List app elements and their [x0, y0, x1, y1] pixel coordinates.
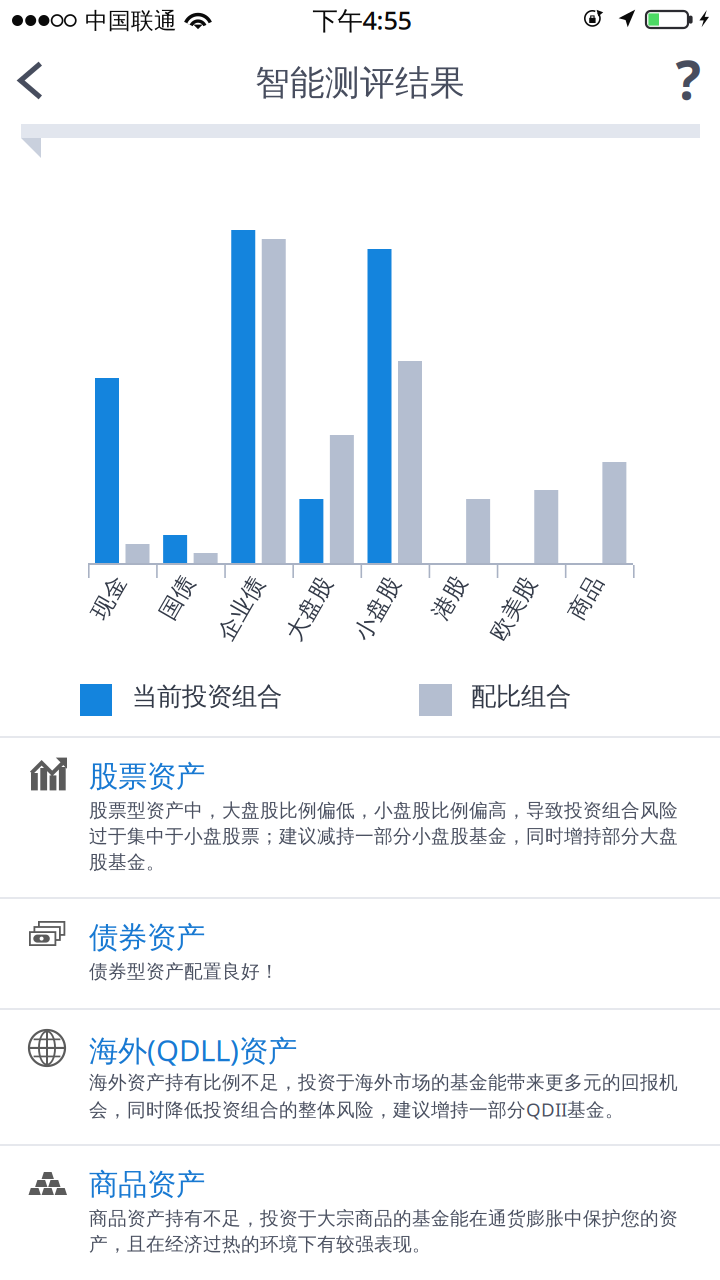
staticText: 中国联通 — [85, 7, 177, 35]
staticText: 港股 — [427, 584, 473, 611]
staticText: 下午4:55 — [312, 3, 411, 37]
button[interactable]: 股票资产 — [0, 738, 720, 897]
button[interactable]: 帮助 — [655, 46, 720, 112]
staticText: 债券型资产配置良好！ — [89, 960, 279, 983]
staticText: 小盘股 — [343, 595, 412, 622]
staticText: 股票型资产中，大盘股比例偏低，小盘股比例偏高，导致投资组合风险过于集中于小盘股票… — [89, 799, 678, 874]
button[interactable]: 智能测评结果 — [210, 50, 510, 116]
button[interactable]: 海外(QDLL)资产 — [0, 1010, 720, 1144]
staticText: 商品资产 — [89, 1166, 205, 1202]
staticText: 商品 — [563, 584, 609, 611]
staticText: 欧美股 — [479, 595, 548, 622]
staticText: 大盘股 — [275, 595, 344, 622]
staticText: ? — [675, 44, 700, 114]
staticText: 配比组合 — [471, 681, 571, 712]
staticText: 现金 — [86, 584, 132, 611]
staticText: 国债 — [154, 584, 200, 611]
button[interactable]: 债券资产 — [0, 899, 720, 1008]
staticText: 债券资产 — [89, 919, 205, 955]
staticText: 股票资产 — [89, 758, 205, 794]
staticText: 智能测评结果 — [255, 62, 465, 104]
button[interactable]: 商品资产 — [0, 1146, 720, 1280]
button[interactable]: 返回 — [0, 46, 74, 112]
staticText: 企业债 — [207, 595, 276, 622]
staticText: 海外(QDLL)资产 — [89, 1030, 297, 1069]
staticText: 商品资产持有不足，投资于大宗商品的基金能在通货膨胀中保护您的资产，且在经济过热的… — [89, 1207, 678, 1256]
staticText: 海外资产持有比例不足，投资于海外市场的基金能带来更多元的回报机会，同时降低投资组… — [89, 1071, 678, 1122]
staticText: 当前投资组合 — [132, 681, 282, 712]
